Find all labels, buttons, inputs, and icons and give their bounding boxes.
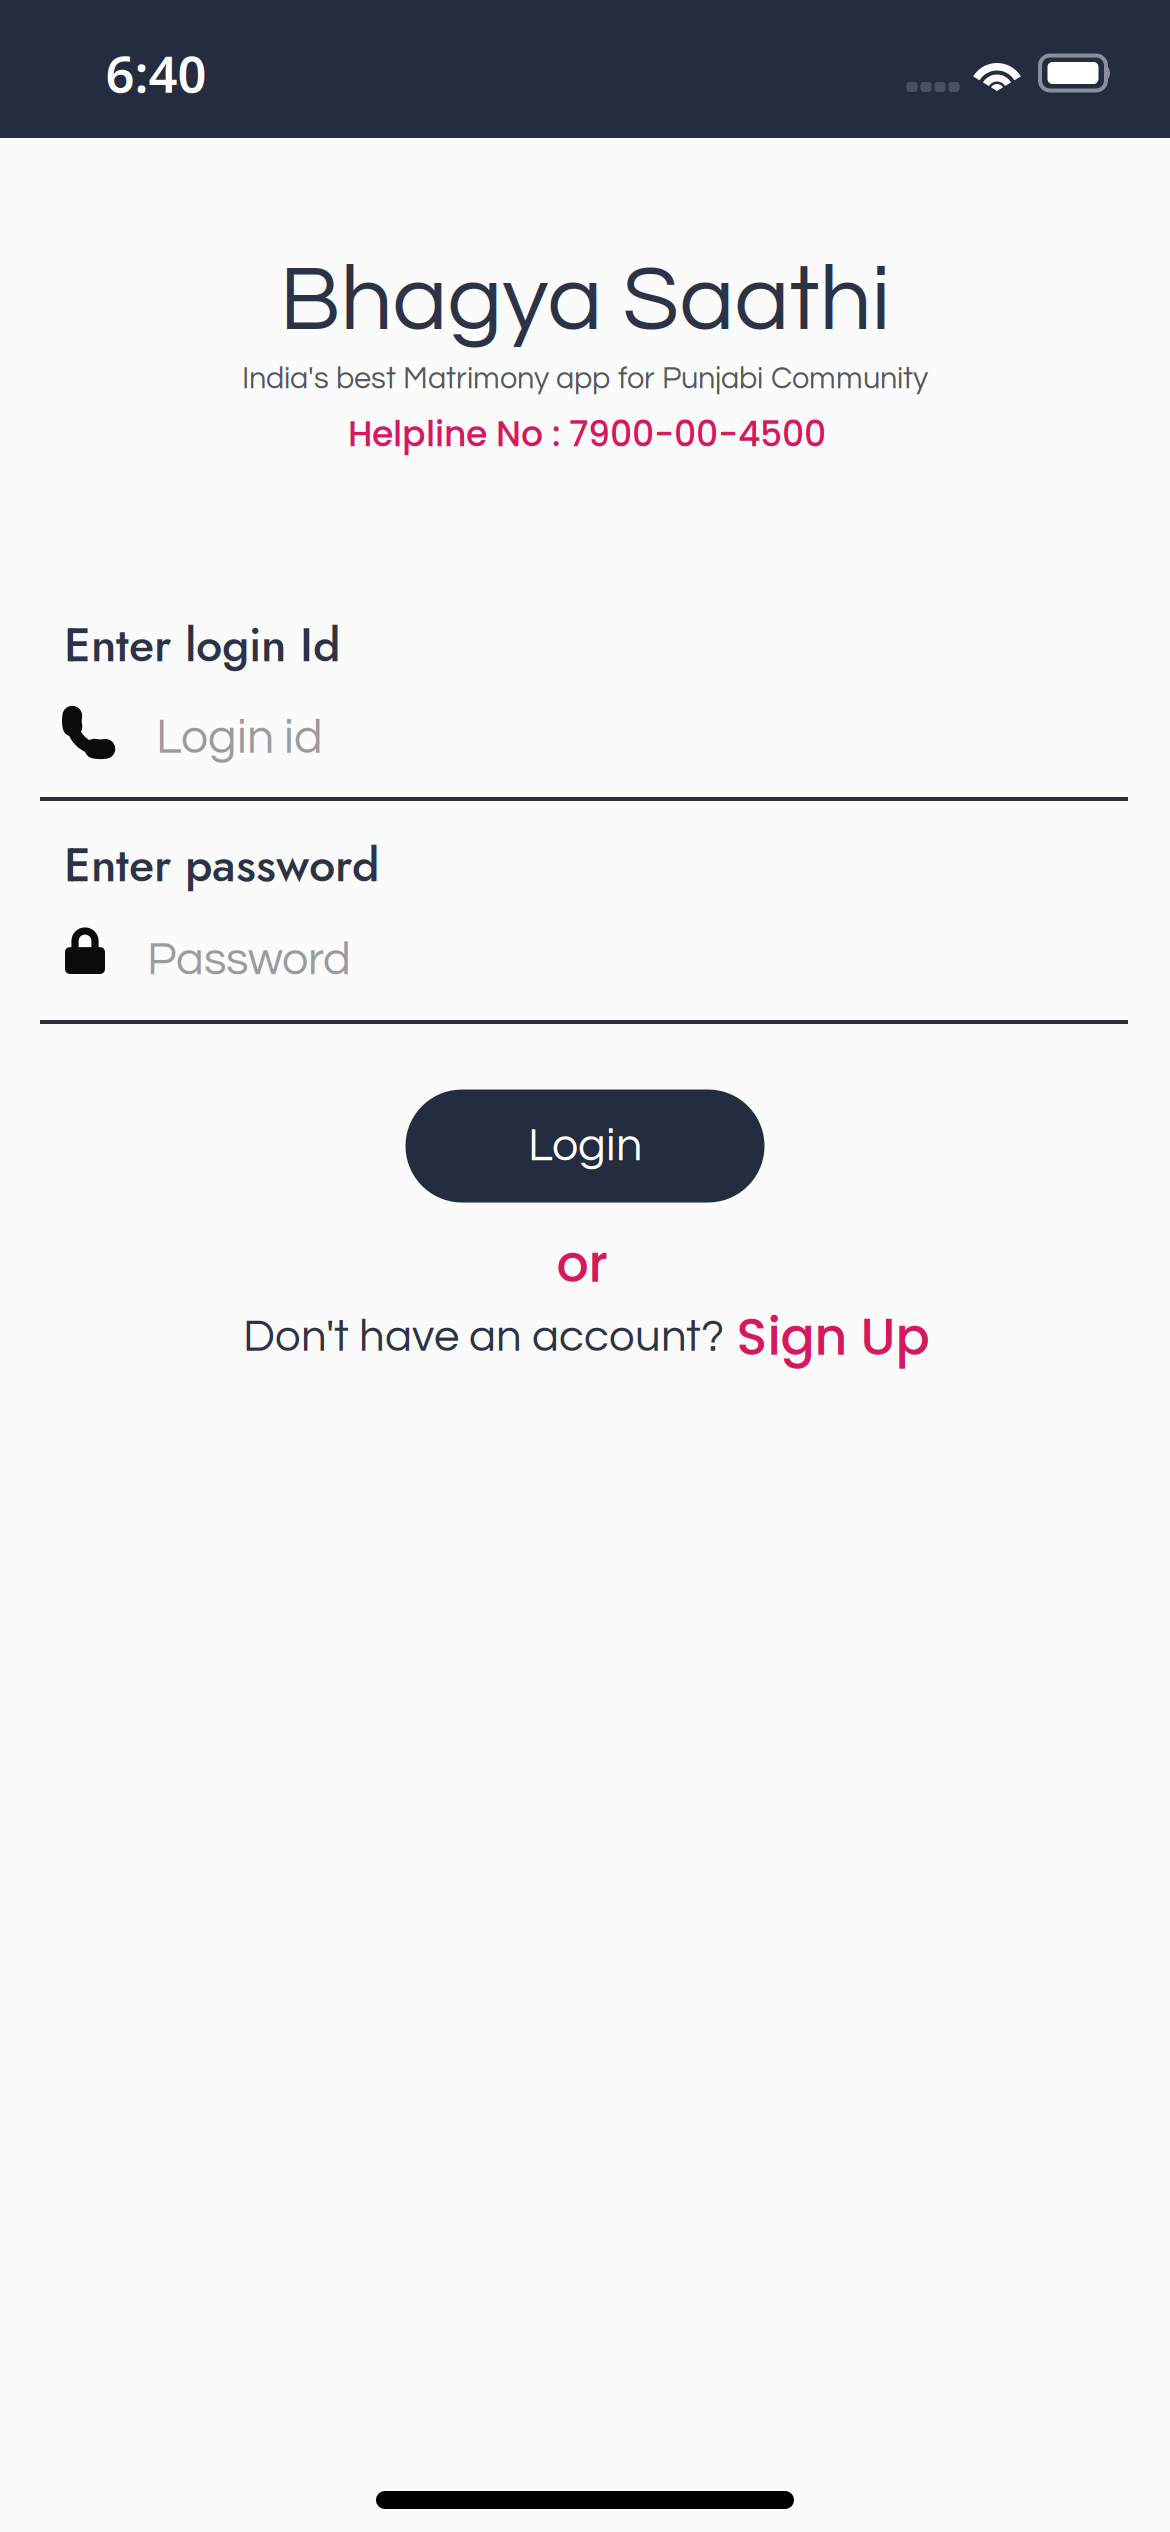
button[interactable]: Helpline No : 7900-00-4500	[348, 410, 826, 458]
staticText: Login	[528, 1122, 642, 1170]
staticText: Password	[147, 936, 351, 984]
staticText: Login id	[156, 713, 323, 763]
staticText: Enter password	[64, 831, 379, 899]
staticText: Enter login Id	[64, 611, 340, 679]
staticText: Don't have an account?	[243, 1314, 724, 1360]
button[interactable]: Login id	[0, 658, 1170, 804]
staticText: 6:40	[105, 39, 206, 107]
staticText: India's best Matrimony app for Punjabi C…	[242, 363, 928, 395]
button[interactable]: Login	[405, 1089, 764, 1202]
staticText: Bhagya Saathi	[279, 254, 890, 348]
button[interactable]: Sign Up	[736, 1301, 929, 1372]
staticText: Helpline No : 7900-00-4500	[348, 410, 826, 458]
button[interactable]: Password	[0, 875, 1170, 1021]
staticText: or	[556, 1228, 607, 1299]
staticText: Sign Up	[736, 1301, 929, 1372]
